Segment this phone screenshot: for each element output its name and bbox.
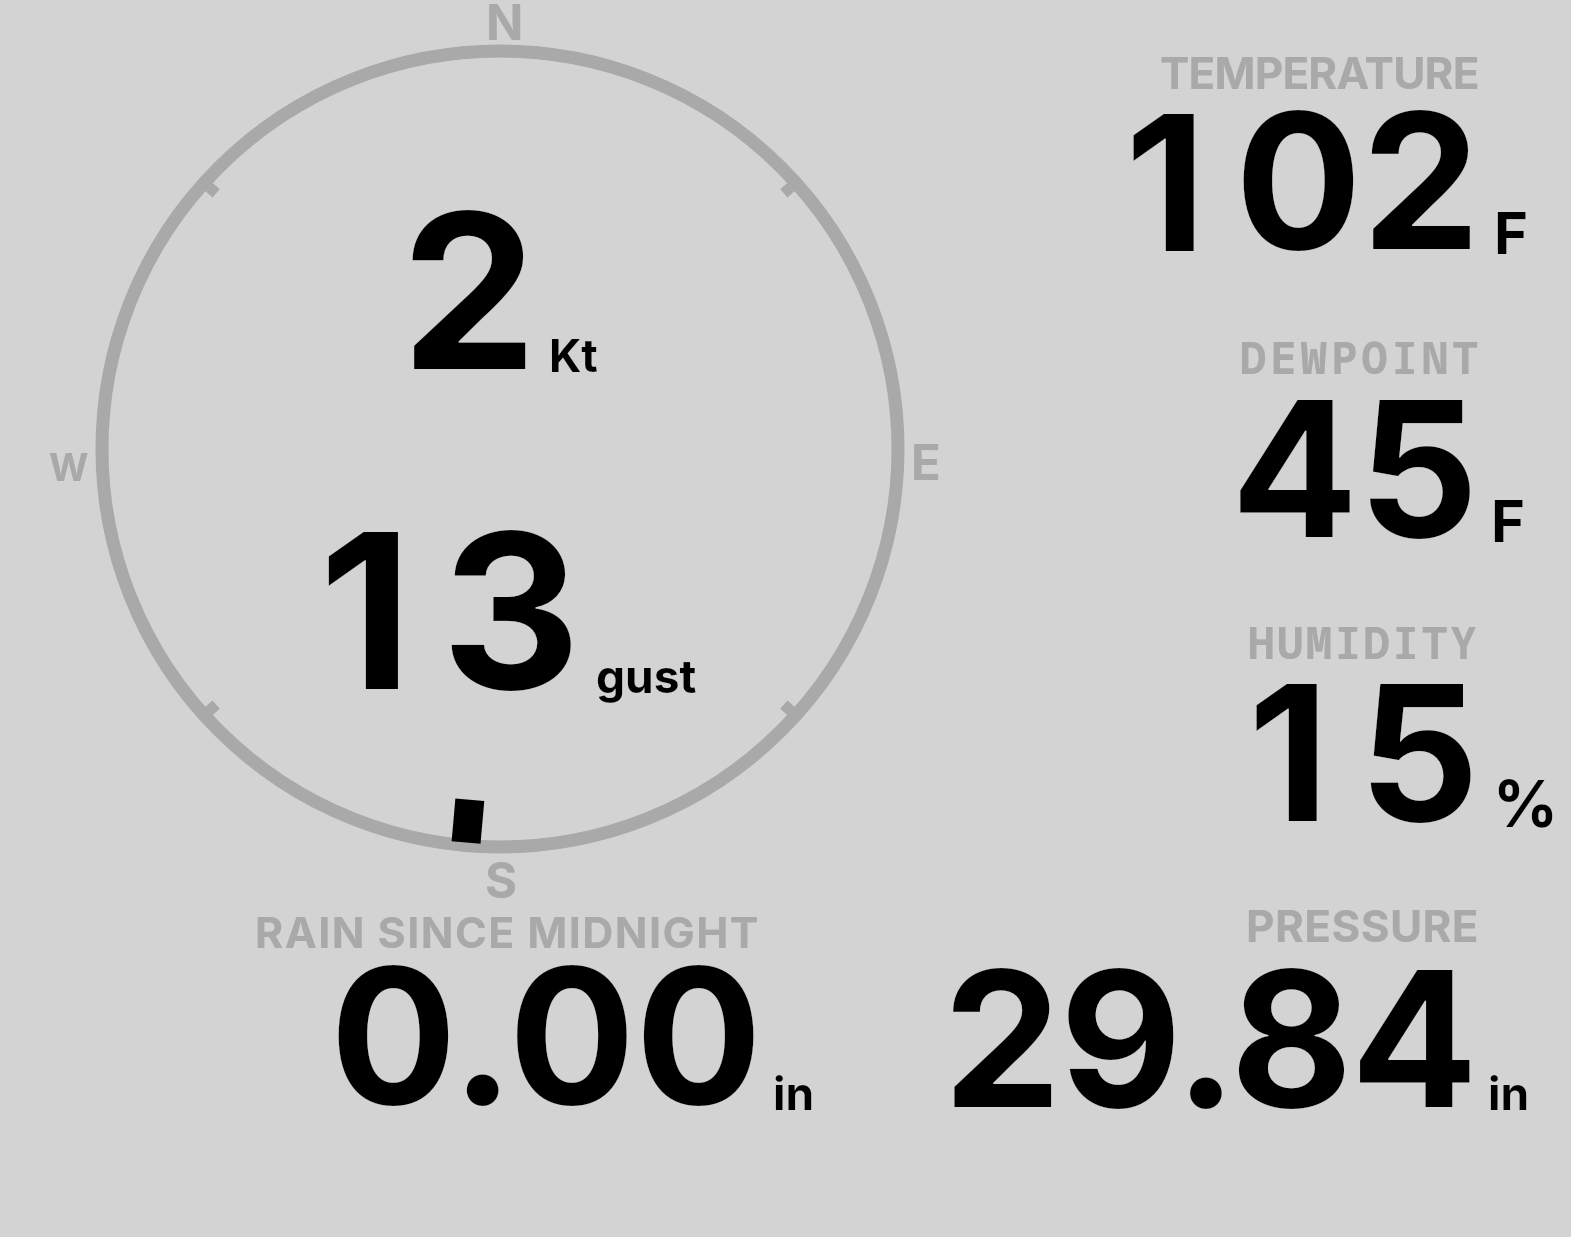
staticText: in xyxy=(1488,1065,1530,1121)
staticText: N xyxy=(486,0,524,52)
staticText: HUMIDITY xyxy=(1248,612,1480,672)
staticText: 02 xyxy=(1235,67,1481,294)
staticText: F xyxy=(1491,486,1526,556)
button[interactable]: Wind 2 knots, gusting 13, direction sout… xyxy=(40,0,960,905)
staticText: E xyxy=(911,433,941,492)
staticText: 13 xyxy=(319,480,610,741)
button[interactable]: Rain since midnight 0.00 inches xyxy=(240,900,840,1120)
staticText: 0.00 xyxy=(330,922,763,1149)
button[interactable]: Pressure 29.84 inches xyxy=(930,900,1550,1120)
staticText: TEMPERATURE xyxy=(1160,46,1479,99)
staticText: W xyxy=(49,444,89,490)
staticText: F xyxy=(1494,198,1529,268)
button[interactable]: Humidity 15 percent xyxy=(1100,615,1560,835)
staticText: in xyxy=(773,1065,815,1121)
staticText: RAIN SINCE MIDNIGHT xyxy=(255,906,760,958)
staticText: PRESSURE xyxy=(1246,899,1480,952)
staticText: 1 xyxy=(1125,69,1207,296)
staticText: gust xyxy=(596,648,697,704)
staticText: 15 xyxy=(1248,639,1510,866)
button[interactable]: Dewpoint 45 degrees Fahrenheit xyxy=(1100,330,1560,550)
staticText: S xyxy=(485,851,518,910)
staticText: DEWPOINT xyxy=(1240,327,1483,387)
button[interactable]: Temperature 102 degrees Fahrenheit xyxy=(1100,45,1560,265)
staticText: 45 xyxy=(1231,355,1479,582)
staticText: 29.84 xyxy=(943,925,1477,1152)
staticText: % xyxy=(1493,765,1558,842)
staticText: Kt xyxy=(549,328,598,382)
staticText: 2 xyxy=(401,160,538,421)
